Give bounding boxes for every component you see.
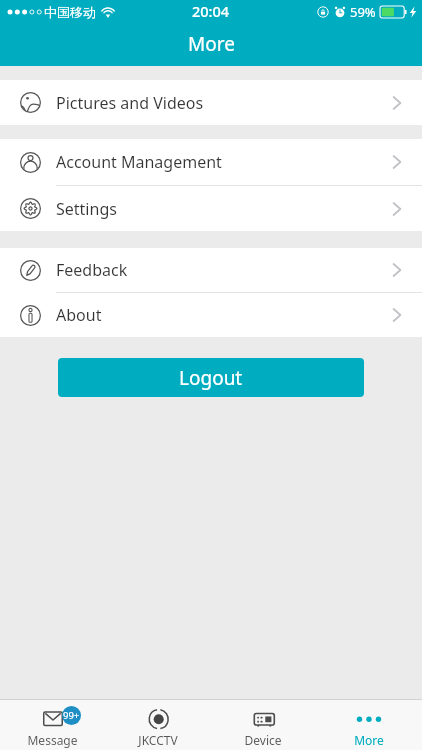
button[interactable]: 99+ bbox=[0, 700, 105, 750]
button[interactable]: Logout bbox=[58, 358, 364, 397]
staticText: Logout bbox=[179, 365, 243, 391]
staticText: 中国移动 bbox=[44, 4, 96, 20]
staticText: Settings bbox=[56, 198, 117, 220]
button[interactable]: Feedback bbox=[0, 248, 422, 292]
button[interactable]: Pictures and Videos bbox=[0, 80, 422, 125]
staticText: More bbox=[354, 732, 384, 748]
staticText: 20:04 bbox=[192, 1, 230, 21]
button[interactable]: More bbox=[316, 700, 422, 750]
staticText: Account Management bbox=[56, 151, 222, 173]
staticText: Device bbox=[244, 732, 282, 748]
staticText: 99+ bbox=[63, 709, 80, 722]
button[interactable]: Account Management bbox=[0, 139, 422, 185]
button[interactable]: JKCCTV bbox=[105, 700, 210, 750]
staticText: JKCCTV bbox=[138, 732, 178, 748]
button[interactable]: Settings bbox=[0, 186, 422, 231]
button[interactable]: Device bbox=[210, 700, 316, 750]
staticText: Message bbox=[27, 732, 78, 748]
staticText: About bbox=[56, 304, 102, 326]
staticText: More bbox=[188, 31, 235, 57]
staticText: 59% bbox=[350, 3, 376, 21]
staticText: Pictures and Videos bbox=[56, 92, 204, 114]
staticText: Feedback bbox=[56, 259, 128, 281]
button[interactable]: About bbox=[0, 293, 422, 337]
